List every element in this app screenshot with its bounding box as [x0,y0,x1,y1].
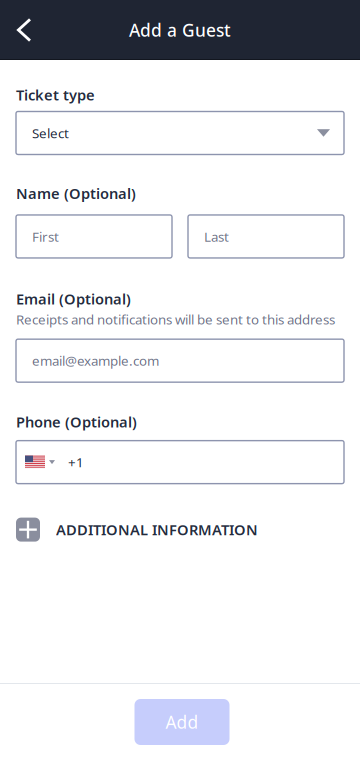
staticText: First [32,228,59,245]
staticText: Name (Optional) [16,183,136,203]
button[interactable]: ADDITIONAL INFORMATION [16,518,344,542]
button[interactable]: Select [16,111,344,154]
button[interactable]: +1 [16,441,344,484]
staticText: email@example.com [32,352,159,369]
button[interactable]: Last [188,215,344,258]
staticText: Add a Guest [129,18,231,41]
staticText: Phone (Optional) [16,412,137,432]
button[interactable]: Add [132,699,227,745]
button[interactable]: email@example.com [16,339,344,382]
staticText: Email (Optional) [16,289,131,308]
button[interactable]: Back [0,0,43,60]
staticText: Ticket type [16,85,95,104]
staticText: Select [32,124,69,142]
staticText: ADDITIONAL INFORMATION [56,520,258,539]
staticText: Last [204,228,229,245]
staticText: Add [165,710,198,733]
button[interactable]: First [16,215,172,258]
staticText: +1 [68,453,84,471]
staticText: Receipts and notifications will be sent … [16,310,335,328]
